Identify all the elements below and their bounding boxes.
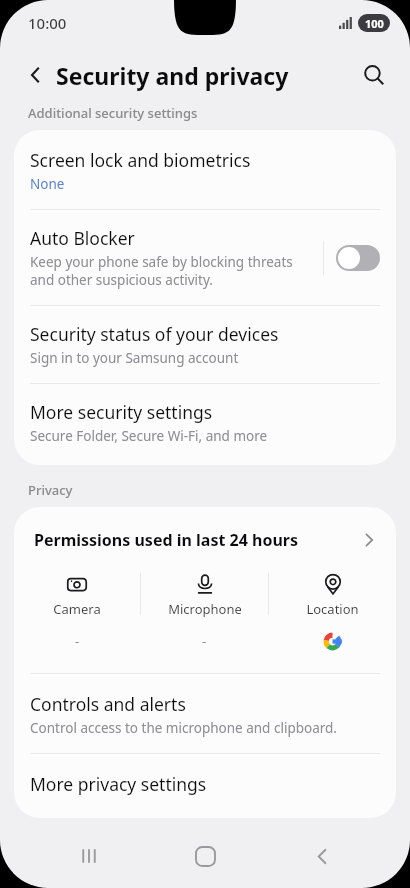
button[interactable]: Home [177,828,233,884]
button[interactable]: Camera [14,573,140,650]
button[interactable]: Back [294,828,350,884]
staticText: Control access to the microphone and cli… [30,719,337,737]
staticText: Security and privacy [56,60,289,91]
staticText: Privacy [28,481,73,499]
staticText: Auto Blocker [30,226,135,250]
staticText: Sign in to your Samsung account [30,349,239,367]
button[interactable]: Back [16,55,56,95]
button[interactable]: Permissions used in last 24 hours [14,507,396,567]
button[interactable]: Location [269,573,396,651]
button[interactable]: Search [354,55,394,95]
staticText: None [30,175,65,193]
staticText: - [75,632,80,650]
staticText: 100 [365,16,384,31]
staticText: Permissions used in last 24 hours [34,529,360,551]
staticText: - [202,632,207,650]
staticText: Security status of your devices [30,322,279,346]
staticText: Additional security settings [28,104,198,122]
staticText: Microphone [168,600,242,618]
staticText: Location [306,600,359,618]
button[interactable]: More privacy settings [14,754,396,818]
staticText: More security settings [30,400,213,424]
staticText: More privacy settings [30,772,207,796]
staticText: Camera [53,600,101,618]
button[interactable]: Recents [61,828,117,884]
button[interactable]: Microphone [141,573,268,650]
button[interactable]: Controls and alerts [14,674,396,753]
button[interactable]: Screen lock and biometrics [14,130,396,209]
staticText: Keep your phone safe by blocking threats… [30,253,311,289]
button[interactable]: Security status of your devices [14,306,396,383]
staticText: 10:00 [28,13,67,33]
button[interactable]: Auto Blocker toggle [336,245,380,271]
button[interactable]: Auto Blocker [14,210,396,305]
staticText: Screen lock and biometrics [30,148,251,172]
staticText: Secure Folder, Secure Wi-Fi, and more [30,427,268,445]
button[interactable]: More security settings [14,384,396,465]
staticText: Controls and alerts [30,692,186,716]
